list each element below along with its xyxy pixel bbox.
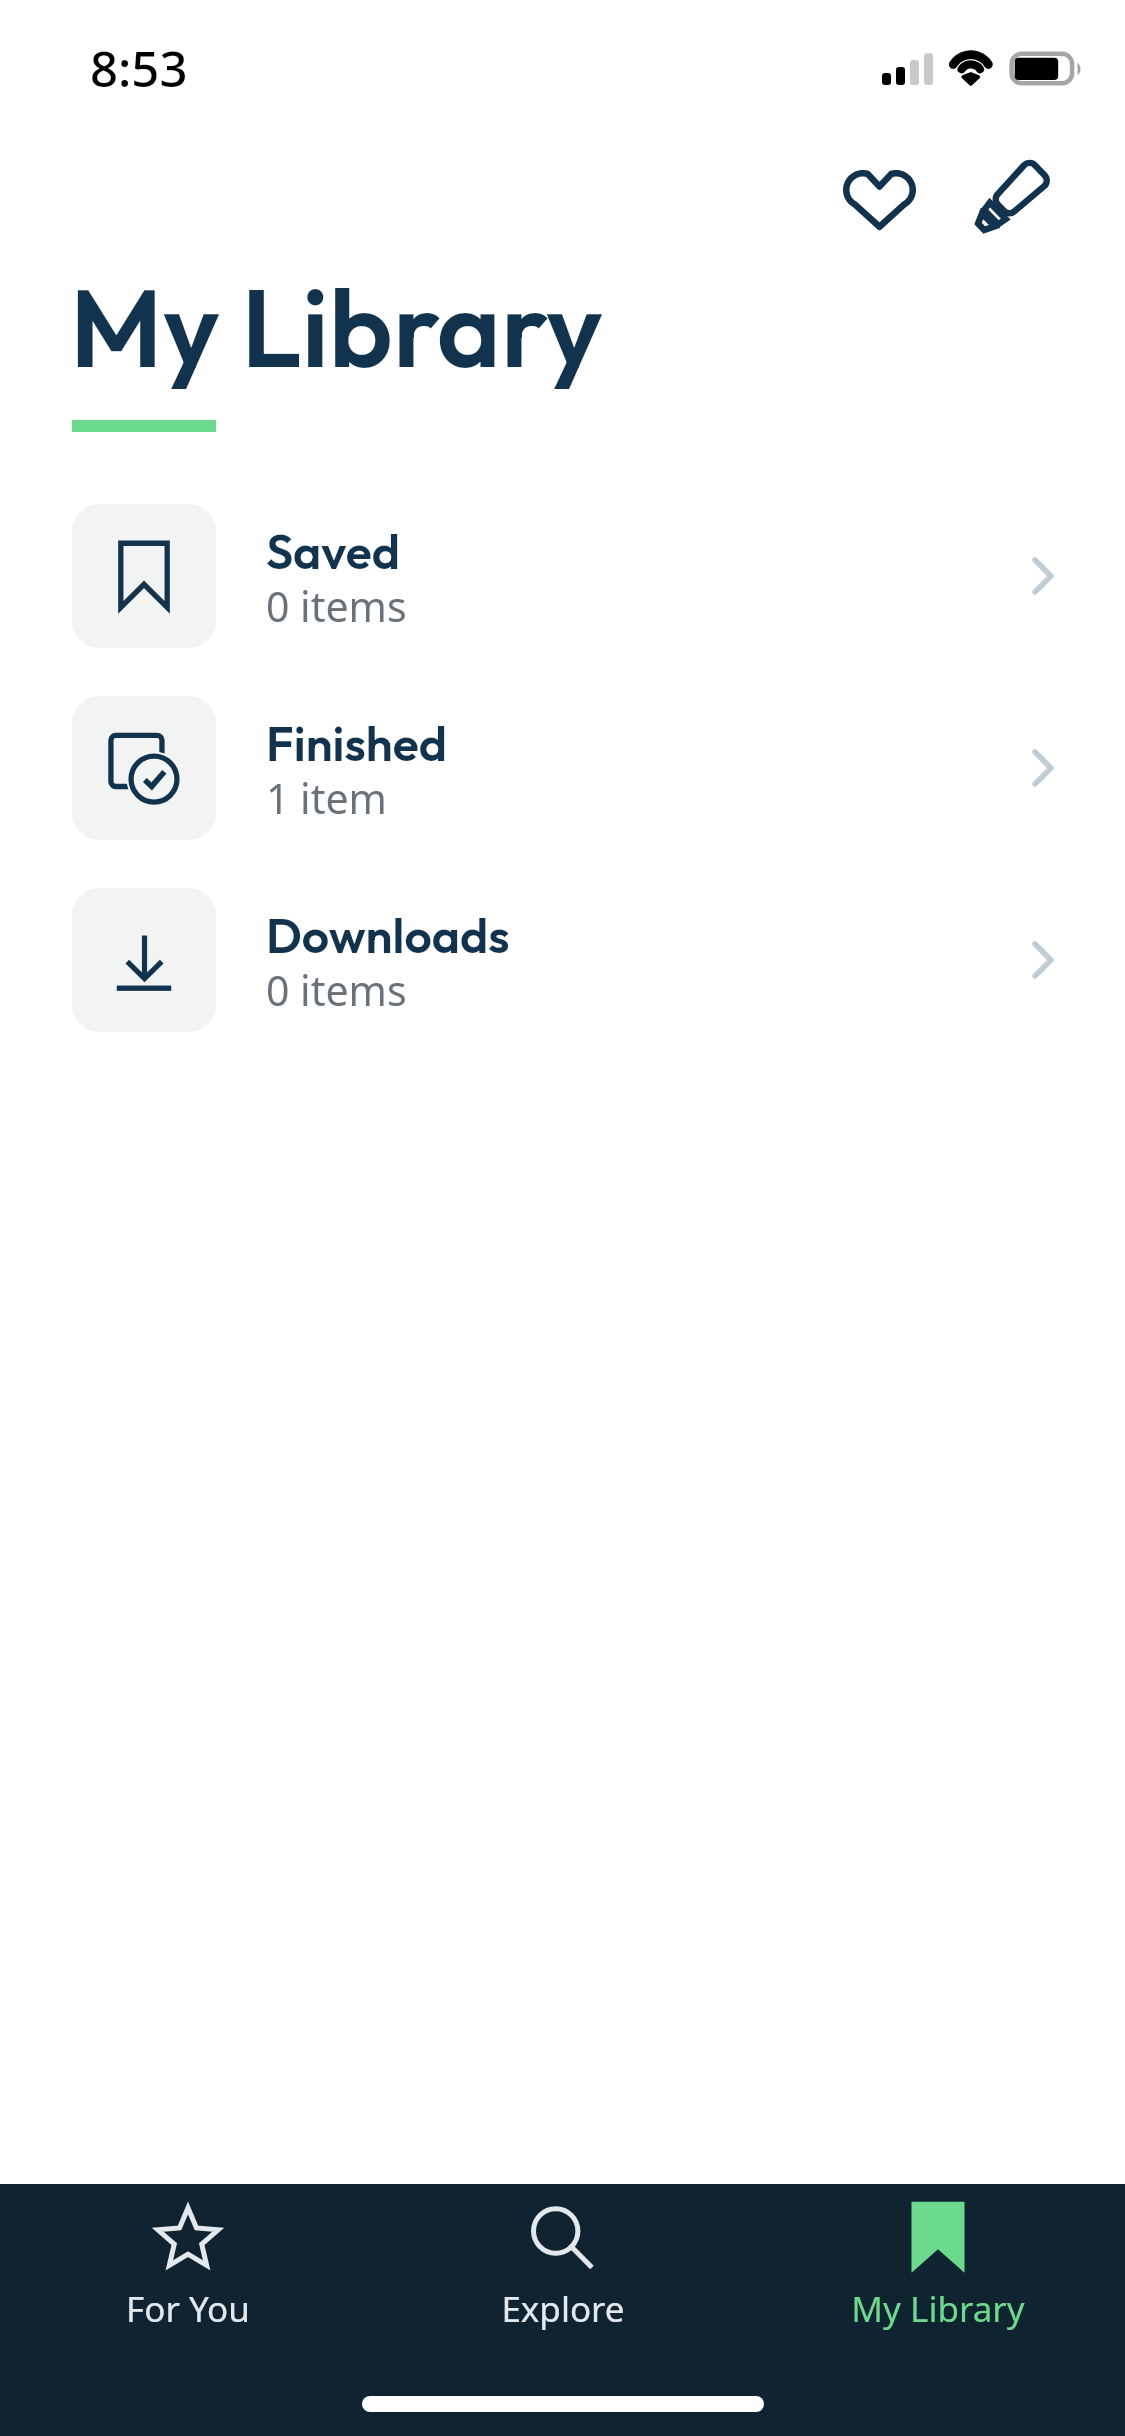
staticText: My Library [851, 2285, 1025, 2333]
staticText: Explore [501, 2285, 625, 2333]
button[interactable]: My Library [750, 2184, 1125, 2370]
staticText: 1 item [266, 770, 387, 826]
staticText: Finished [266, 713, 448, 773]
button[interactable]: For You [0, 2184, 375, 2370]
staticText: For You [126, 2285, 250, 2333]
button[interactable]: Favorites [819, 140, 939, 260]
staticText: My Library [70, 258, 604, 395]
staticText: 0 items [266, 578, 407, 634]
button[interactable]: Finished [0, 672, 1125, 864]
button[interactable]: Downloads [0, 864, 1125, 1056]
staticText: Downloads [266, 905, 510, 965]
staticText: 0 items [266, 962, 407, 1018]
button[interactable]: Explore [375, 2184, 750, 2370]
button[interactable]: Highlights [951, 138, 1071, 258]
button[interactable]: Saved [0, 480, 1125, 672]
staticText: 8:53 [90, 35, 188, 102]
staticText: Saved [266, 521, 400, 581]
